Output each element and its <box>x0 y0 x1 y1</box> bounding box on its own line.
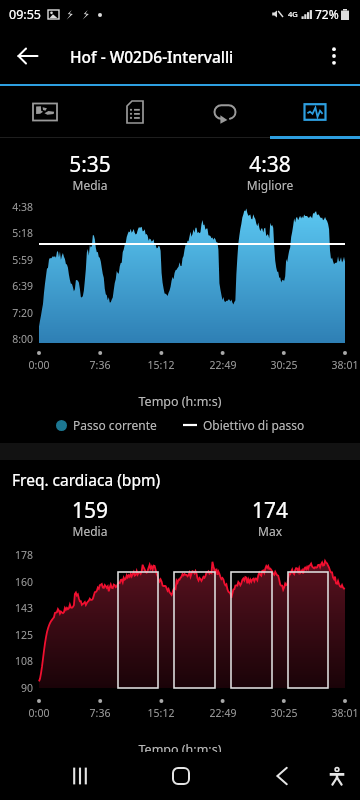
staticText: 30:25 <box>259 706 309 720</box>
staticText: 4G <box>288 9 298 19</box>
staticText: 159 <box>0 496 180 525</box>
staticText: 30:25 <box>259 358 309 372</box>
staticText: 143 <box>5 601 33 615</box>
button[interactable]: Recents <box>56 752 104 800</box>
button[interactable]: More options <box>312 34 356 78</box>
staticText: 5:35 <box>0 150 180 179</box>
staticText: 7:36 <box>75 706 125 720</box>
staticText: Hof - W02D6-Intervalli <box>70 46 234 67</box>
staticText: 90 <box>5 681 33 695</box>
staticText: 178 <box>5 548 33 562</box>
staticText: Migliore <box>180 177 360 193</box>
staticText: Freq. cardiaca (bpm) <box>12 469 161 490</box>
staticText: 125 <box>5 628 33 642</box>
staticText: 6:39 <box>5 279 33 293</box>
staticText: 5:59 <box>5 253 33 267</box>
staticText: 22:49 <box>198 358 248 372</box>
button[interactable]: Laps <box>180 86 270 137</box>
staticText: 5:18 <box>5 226 33 240</box>
staticText: 09:55 <box>9 6 41 23</box>
staticText: 15:12 <box>136 358 186 372</box>
button[interactable]: Charts <box>270 86 360 137</box>
staticText: 22:49 <box>198 706 248 720</box>
staticText: Obiettivo di passo <box>203 417 305 433</box>
staticText: 8:00 <box>5 332 33 346</box>
staticText: 7:36 <box>75 358 125 372</box>
staticText: 108 <box>5 654 33 668</box>
staticText: 4:38 <box>180 150 360 179</box>
button[interactable]: Details <box>90 86 180 137</box>
staticText: Media <box>0 523 180 539</box>
staticText: Max <box>180 523 360 539</box>
staticText: 7:20 <box>5 306 33 320</box>
button[interactable]: Accessibility <box>313 752 360 800</box>
staticText: Passo corrente <box>73 417 157 433</box>
staticText: 38:01 <box>320 358 360 372</box>
staticText: 38:01 <box>320 706 360 720</box>
staticText: 174 <box>180 496 360 525</box>
staticText: 0:00 <box>14 706 64 720</box>
staticText: 15:12 <box>136 706 186 720</box>
staticText: 0:00 <box>14 358 64 372</box>
button[interactable]: Home <box>157 752 205 800</box>
button[interactable]: Back <box>6 34 50 78</box>
button[interactable]: Map <box>0 86 90 137</box>
staticText: 160 <box>5 575 33 589</box>
staticText: Tempo (h:m:s) <box>0 741 360 758</box>
staticText: Media <box>0 177 180 193</box>
staticText: 4:38 <box>5 200 33 214</box>
staticText: 72% <box>315 6 339 22</box>
staticText: Tempo (h:m:s) <box>0 393 360 410</box>
button[interactable]: Back <box>258 752 306 800</box>
